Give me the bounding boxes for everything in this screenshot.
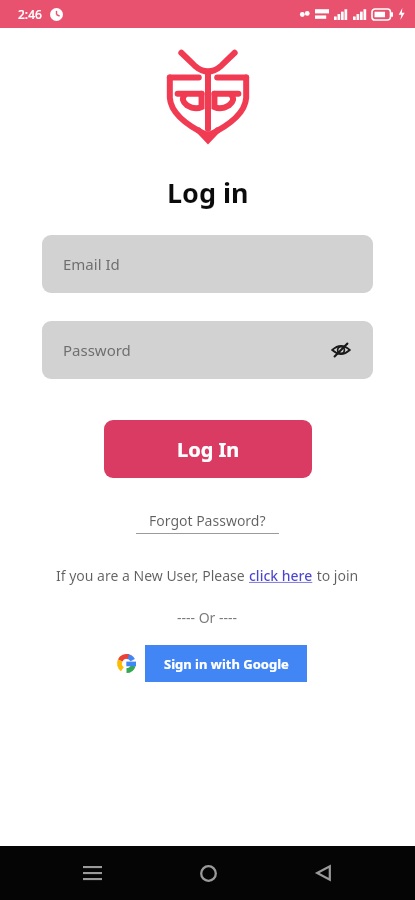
button[interactable]: Sign in with Google <box>108 645 307 682</box>
staticText: Sign in with Google <box>164 655 289 673</box>
button[interactable]: Show password <box>327 336 355 364</box>
staticText: Log In <box>177 436 240 463</box>
button[interactable]: Home <box>185 850 231 896</box>
staticText: Log in <box>167 174 249 211</box>
staticText: Email Id <box>63 254 120 274</box>
button[interactable]: Forgot Password? <box>130 511 285 534</box>
staticText: click here <box>249 566 313 585</box>
staticText: Forgot Password? <box>149 511 266 530</box>
button[interactable]: Password <box>42 321 373 379</box>
staticText: to join <box>313 566 359 585</box>
staticText: Password <box>63 340 131 360</box>
staticText: ---- Or ---- <box>177 608 238 627</box>
staticText: If you are a New User, Please <box>56 566 249 585</box>
button[interactable]: Email Id <box>42 235 373 293</box>
staticText: 2:46 <box>18 6 42 22</box>
button[interactable]: Recent apps <box>69 850 115 896</box>
button[interactable]: Log In <box>104 420 312 478</box>
button[interactable]: Back <box>300 850 346 896</box>
button[interactable]: click here <box>249 566 313 585</box>
